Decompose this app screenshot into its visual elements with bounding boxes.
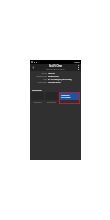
staticText: Enhanced: [45, 101, 58, 103]
staticText: Warner Bros.: [48, 81, 80, 84]
button[interactable]: Enhanced: [45, 92, 58, 104]
staticText: Maximum 4K Upscale: [61, 94, 71, 98]
staticText: Visual: [31, 72, 47, 75]
button[interactable]: More options: [75, 64, 81, 71]
staticText: Sci-Fi One: [49, 64, 63, 68]
staticText: 3840x2160: [48, 75, 80, 78]
staticText: 51.48 GiB (55,287 bytes): [48, 78, 80, 81]
staticText: HDR10: [48, 72, 80, 75]
staticText: Resolution: [31, 75, 47, 78]
button[interactable]: Back: [30, 64, 36, 71]
staticText: Publisher: [31, 81, 47, 84]
staticText: Size: [31, 78, 47, 81]
staticText: 100%: [74, 61, 80, 64]
button[interactable]: Maximum 4K Upscale: [60, 93, 79, 100]
staticText: Enhance: [32, 88, 42, 91]
staticText: Standard: [31, 101, 44, 103]
button[interactable]: Standard: [31, 92, 44, 104]
staticText: Ultra HD Blu-ray Disc: [46, 68, 65, 71]
